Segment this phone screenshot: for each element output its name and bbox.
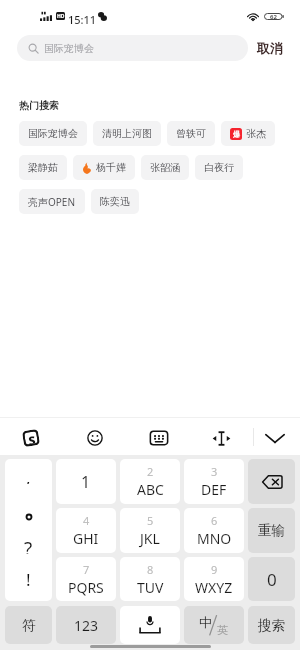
button[interactable]: 中 [184, 606, 244, 644]
staticText: TUV [137, 578, 164, 597]
button[interactable]: 1 [56, 459, 116, 504]
staticText: 取消 [257, 40, 283, 56]
staticText: ? [24, 536, 33, 554]
staticText: 1 [81, 471, 91, 493]
button[interactable]: 重输 [248, 508, 295, 553]
button[interactable]: 3 [184, 459, 244, 504]
staticText: 白夜行 [204, 161, 234, 174]
button[interactable]: 曾轶可 [167, 121, 215, 146]
staticText: 国际宠博会 [44, 42, 94, 55]
staticText: 8 [147, 562, 154, 577]
staticText: 123 [74, 616, 99, 635]
staticText: 62 [270, 13, 277, 20]
staticText: 3 [211, 464, 218, 479]
staticText: HD [57, 13, 65, 20]
button[interactable]: 取消 [255, 35, 285, 61]
button[interactable]: 陈奕迅 [91, 189, 139, 214]
button[interactable]: Backspace [248, 459, 295, 504]
button[interactable]: 0 [248, 557, 295, 601]
button[interactable]: 白夜行 [195, 155, 243, 180]
staticText: 陈奕迅 [100, 195, 130, 208]
staticText: PQRS [68, 578, 104, 597]
button[interactable]: 5 [120, 508, 180, 553]
other: Voice input [135, 616, 165, 634]
button[interactable]: 梁静茹 [19, 155, 67, 180]
staticText: 5 [147, 513, 154, 528]
button[interactable]: Voice input [120, 606, 180, 644]
button[interactable]: 国际宠博会 [17, 35, 248, 61]
staticText: 4 [83, 513, 90, 528]
staticText: 0 [267, 568, 277, 591]
staticText: 9 [211, 562, 218, 577]
button[interactable]: 2 [120, 459, 180, 504]
staticText: 热门搜索 [19, 99, 59, 112]
staticText: 7 [83, 562, 90, 577]
staticText: 梁静茹 [28, 161, 58, 174]
button[interactable]: Move cursor [196, 420, 246, 456]
staticText: DEF [201, 480, 227, 499]
staticText: , [26, 466, 31, 484]
button[interactable]: 爆 [221, 121, 275, 146]
staticText: ! [26, 568, 31, 586]
button[interactable]: 4 [56, 508, 116, 553]
staticText: S [27, 431, 36, 444]
button[interactable]: , [5, 459, 52, 601]
button[interactable]: 7 [56, 557, 116, 601]
staticText: ABC [137, 480, 164, 499]
staticText: 张韶涵 [150, 161, 180, 174]
staticText: 曾轶可 [176, 127, 206, 140]
staticText: 6 [211, 513, 218, 528]
button[interactable]: Hide keyboard [254, 420, 296, 456]
staticText: 2 [147, 464, 154, 479]
button[interactable]: Emoji [72, 420, 118, 456]
button[interactable]: 123 [56, 606, 116, 644]
button[interactable]: Switch keyboard layout [136, 420, 182, 456]
staticText: 中 [199, 614, 212, 630]
button[interactable]: 6 [184, 508, 244, 553]
button[interactable]: 符 [5, 606, 52, 644]
staticText: 张杰 [246, 127, 266, 140]
staticText: 国际宠博会 [28, 127, 78, 140]
staticText: 15:11 [68, 12, 97, 27]
staticText: 重输 [258, 522, 285, 539]
staticText: JKL [140, 529, 160, 548]
button[interactable]: 国际宠博会 [19, 121, 87, 146]
other: Backspace [262, 475, 282, 489]
staticText: 英 [217, 623, 228, 637]
staticText: 杨千嬅 [96, 161, 126, 174]
button[interactable]: 8 [120, 557, 180, 601]
staticText: 清明上河图 [102, 127, 152, 140]
button[interactable]: 亮声OPEN [19, 189, 85, 214]
button[interactable]: 杨千嬅 [73, 155, 135, 180]
button[interactable]: 搜索 [248, 606, 295, 644]
staticText: WXYZ [195, 578, 233, 597]
staticText: GHI [73, 529, 99, 548]
staticText: 爆 [233, 130, 240, 139]
staticText: MNO [197, 529, 232, 548]
button[interactable]: 张韶涵 [141, 155, 189, 180]
button[interactable]: 清明上河图 [93, 121, 161, 146]
staticText: 搜索 [258, 617, 285, 634]
button[interactable]: 9 [184, 557, 244, 601]
button[interactable]: Sogou input settings [8, 420, 54, 456]
staticText: 亮声OPEN [28, 195, 76, 209]
staticText: 符 [22, 617, 36, 634]
